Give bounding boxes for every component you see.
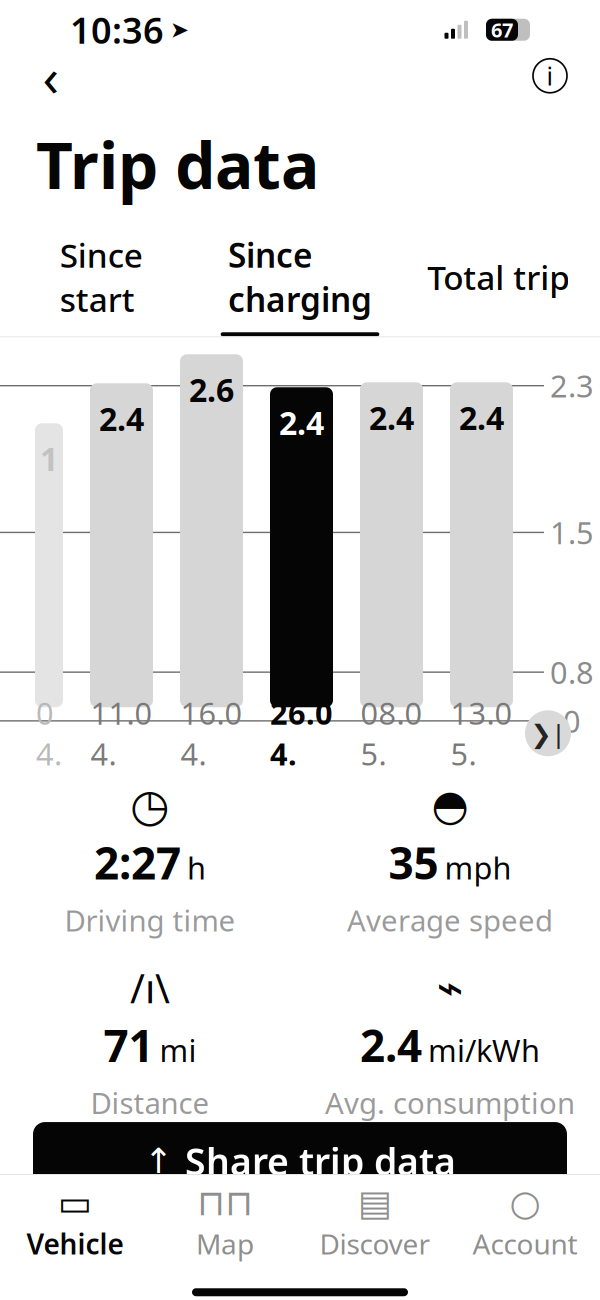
button[interactable]: 04. — [35, 711, 63, 755]
staticText: 10:36 — [70, 6, 164, 54]
staticText: ◷ — [130, 780, 170, 831]
staticText: 1 — [40, 437, 58, 480]
staticText: Distance — [90, 1083, 209, 1122]
staticText: Total trip — [427, 255, 570, 299]
staticText: 2.6 — [189, 368, 234, 411]
staticText: ▭ — [58, 1183, 92, 1223]
staticText: Average speed — [347, 901, 553, 940]
button[interactable]: ⊓⊓ — [150, 1175, 300, 1272]
staticText: h — [187, 847, 206, 888]
staticText: 11.04. — [90, 693, 152, 774]
button[interactable]: Total trip — [411, 255, 586, 314]
staticText: mi/kWh — [428, 1030, 540, 1070]
staticText: 0.8 — [550, 652, 594, 692]
staticText: 71 — [103, 1016, 153, 1074]
staticText: 04. — [36, 693, 62, 774]
staticText: ○ — [509, 1183, 540, 1223]
staticText: Driving time — [64, 901, 235, 940]
staticText: 2.4 — [279, 401, 324, 444]
button[interactable]: 11.04. — [90, 711, 153, 755]
staticText: 08.05. — [360, 693, 422, 774]
staticText: Since charging — [228, 233, 372, 321]
button[interactable]: Since charging — [213, 233, 387, 336]
staticText: Since start — [60, 233, 143, 321]
button[interactable]: ↑ — [33, 1122, 567, 1200]
staticText: 2.4 — [360, 1016, 422, 1074]
staticText: 2.4 — [99, 397, 144, 440]
staticText: ❯| — [530, 716, 565, 750]
staticText: ↑ — [144, 1141, 173, 1181]
staticText: 67 — [491, 16, 513, 43]
button[interactable]: 08.05. — [360, 711, 423, 755]
staticText: Trip data — [36, 122, 319, 207]
staticText: 26.04. — [270, 693, 333, 774]
staticText: 1.5 — [550, 512, 594, 553]
staticText: 0 — [563, 700, 581, 741]
staticText: 13.05. — [450, 693, 512, 774]
staticText: ◓ — [431, 781, 468, 829]
staticText: 2:27 — [94, 833, 181, 892]
staticText: Share trip data — [185, 1136, 456, 1186]
staticText: 2.4 — [459, 396, 504, 439]
staticText: Discover — [319, 1225, 430, 1262]
button[interactable]: ▭ — [0, 1175, 150, 1272]
button[interactable]: 13.05. — [450, 711, 513, 755]
staticText: ➤ — [170, 17, 189, 43]
staticText: Account — [472, 1225, 577, 1262]
staticText: 16.04. — [180, 693, 242, 774]
staticText: ▤ — [358, 1183, 392, 1223]
staticText: mph — [444, 847, 511, 888]
button[interactable]: Information — [528, 54, 572, 98]
staticText: ⊓⊓ — [197, 1183, 253, 1223]
button[interactable]: 16.04. — [180, 711, 243, 755]
button[interactable]: Since start — [14, 233, 189, 336]
staticText: Map — [196, 1225, 254, 1262]
staticText: /ı\ — [130, 961, 170, 1014]
button[interactable]: ▤ — [300, 1175, 450, 1272]
staticText: ⌁ — [436, 962, 463, 1013]
staticText: 35 — [388, 833, 438, 892]
button[interactable]: Back — [28, 53, 74, 99]
button[interactable]: 26.04. — [270, 711, 333, 755]
staticText: Avg. consumption — [325, 1083, 575, 1122]
staticText: ‹ — [42, 40, 59, 111]
button[interactable]: ○ — [450, 1175, 600, 1272]
staticText: 2.4 — [369, 396, 414, 439]
button[interactable]: Jump to latest — [523, 708, 573, 758]
staticText: mi — [159, 1030, 196, 1070]
staticText: Vehicle — [26, 1225, 123, 1262]
staticText: 2.3 — [550, 365, 594, 406]
staticText: i — [546, 59, 553, 92]
